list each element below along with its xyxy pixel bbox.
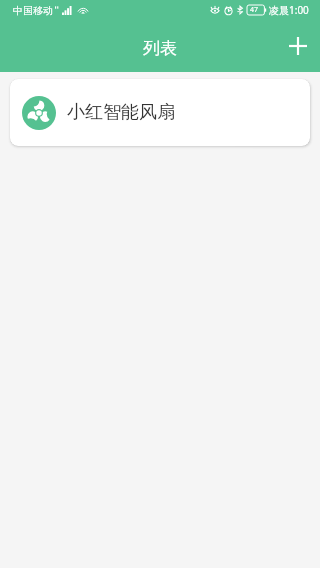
button[interactable]: Add [276,24,320,68]
staticText: 列表 [143,38,177,59]
button[interactable]: 小红智能风扇 [10,79,310,146]
staticText: 中国移动 [13,4,53,17]
staticText: 小红智能风扇 [67,101,175,124]
staticText: 47 [250,5,259,15]
staticText: 凌晨1:00 [269,3,309,17]
